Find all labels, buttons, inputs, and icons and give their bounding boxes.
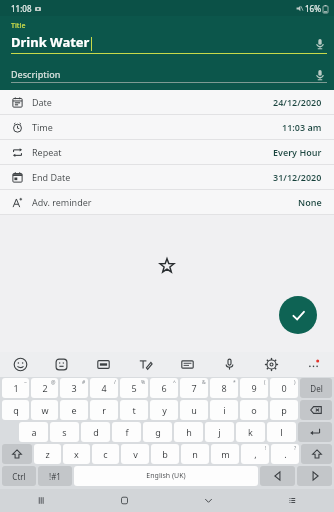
staticText: * <box>233 379 236 386</box>
button[interactable]: hand <box>124 352 166 377</box>
staticText: . <box>284 448 287 460</box>
staticText: g <box>155 426 161 438</box>
button[interactable]: a <box>19 422 48 442</box>
staticText: 11:08 <box>11 3 32 14</box>
button[interactable]: 3 <box>60 378 88 398</box>
staticText: ~ <box>24 379 27 386</box>
button[interactable]: mic <box>208 352 250 377</box>
button[interactable]: Date <box>0 90 334 115</box>
button[interactable]: End Date <box>0 165 334 190</box>
button[interactable]: h <box>174 422 203 442</box>
staticText: ! <box>265 445 267 452</box>
staticText: Repeat <box>32 146 62 158</box>
staticText: ^ <box>173 379 176 386</box>
button[interactable]: Ctrl <box>2 466 36 486</box>
staticText: z <box>45 448 50 460</box>
staticText: a <box>31 426 37 438</box>
button[interactable]: shift <box>2 444 32 464</box>
button[interactable]: c <box>92 444 119 464</box>
button[interactable]: . <box>271 444 299 464</box>
staticText: o <box>251 404 257 416</box>
button[interactable]: u <box>180 400 208 420</box>
button[interactable]: Save reminder <box>279 296 317 334</box>
button[interactable]: clip <box>166 352 208 377</box>
button[interactable]: r <box>90 400 118 420</box>
button[interactable]: enter <box>298 422 332 442</box>
staticText: 31/12/2020 <box>273 171 322 183</box>
staticText: 16% <box>305 3 321 14</box>
staticText: 0 <box>281 382 287 394</box>
button[interactable]: left <box>260 466 295 486</box>
button[interactable]: 7 <box>180 378 208 398</box>
button[interactable]: i <box>210 400 238 420</box>
button[interactable]: y <box>150 400 178 420</box>
button[interactable]: 9 <box>240 378 268 398</box>
button[interactable]: t <box>120 400 148 420</box>
button[interactable]: emoji <box>0 352 41 377</box>
staticText: d <box>93 426 99 438</box>
staticText: 24/12/2020 <box>273 96 322 108</box>
button[interactable]: 0 <box>270 378 298 398</box>
button[interactable]: n <box>181 444 209 464</box>
button[interactable]: z <box>34 444 61 464</box>
button[interactable]: j <box>205 422 234 442</box>
button[interactable]: 6 <box>150 378 178 398</box>
button[interactable]: 2 <box>31 378 58 398</box>
button[interactable]: Switch keyboard <box>250 489 334 512</box>
button[interactable]: e <box>60 400 88 420</box>
button[interactable]: d <box>81 422 110 442</box>
staticText: @ <box>51 379 56 386</box>
button[interactable]: l <box>267 422 296 442</box>
button[interactable]: Hide keyboard <box>166 489 250 512</box>
staticText: Ctrl <box>12 471 26 482</box>
staticText: u <box>191 404 197 416</box>
button[interactable]: more <box>292 352 334 377</box>
button[interactable]: x <box>63 444 90 464</box>
staticText: t <box>132 404 136 416</box>
button[interactable]: 8 <box>210 378 238 398</box>
staticText: f <box>125 426 129 438</box>
staticText: k <box>248 426 253 438</box>
staticText: i <box>223 404 226 416</box>
staticText: w <box>41 404 49 416</box>
staticText: ? <box>294 445 297 452</box>
button[interactable]: p <box>270 400 298 420</box>
button[interactable]: sticker <box>41 352 82 377</box>
button[interactable]: Time <box>0 115 334 140</box>
button[interactable]: shift <box>301 444 332 464</box>
button[interactable]: k <box>236 422 265 442</box>
button[interactable]: b <box>151 444 179 464</box>
button[interactable]: q <box>2 400 29 420</box>
button[interactable]: m <box>211 444 239 464</box>
button[interactable]: , <box>241 444 269 464</box>
button[interactable]: English (UK) <box>74 466 258 486</box>
button[interactable]: Del <box>300 378 332 398</box>
staticText: ) <box>294 379 296 386</box>
button[interactable]: f <box>112 422 141 442</box>
button[interactable]: 1 <box>2 378 29 398</box>
button[interactable]: Voice input description <box>313 68 327 82</box>
button[interactable]: settings <box>250 352 292 377</box>
button[interactable]: w <box>31 400 58 420</box>
button[interactable]: 5 <box>120 378 148 398</box>
button[interactable]: right <box>297 466 332 486</box>
staticText: Drink Water <box>11 33 90 51</box>
button[interactable]: !#1 <box>38 466 72 486</box>
button[interactable]: v <box>121 444 149 464</box>
button[interactable]: Home <box>83 489 166 512</box>
button[interactable]: Recent apps <box>0 489 83 512</box>
button[interactable]: 4 <box>90 378 118 398</box>
button[interactable]: Voice input title <box>313 37 327 51</box>
staticText: Every Hour <box>273 146 322 158</box>
button[interactable]: gif <box>82 352 124 377</box>
button[interactable]: Repeat <box>0 140 334 165</box>
button[interactable]: backspace <box>300 400 332 420</box>
staticText: 6 <box>161 382 167 394</box>
button[interactable]: Adv. reminder <box>0 190 334 215</box>
button[interactable]: o <box>240 400 268 420</box>
button[interactable]: g <box>143 422 172 442</box>
button[interactable]: s <box>50 422 79 442</box>
staticText: 3 <box>71 382 77 394</box>
staticText: Date <box>32 96 52 108</box>
staticText: y <box>162 404 167 416</box>
